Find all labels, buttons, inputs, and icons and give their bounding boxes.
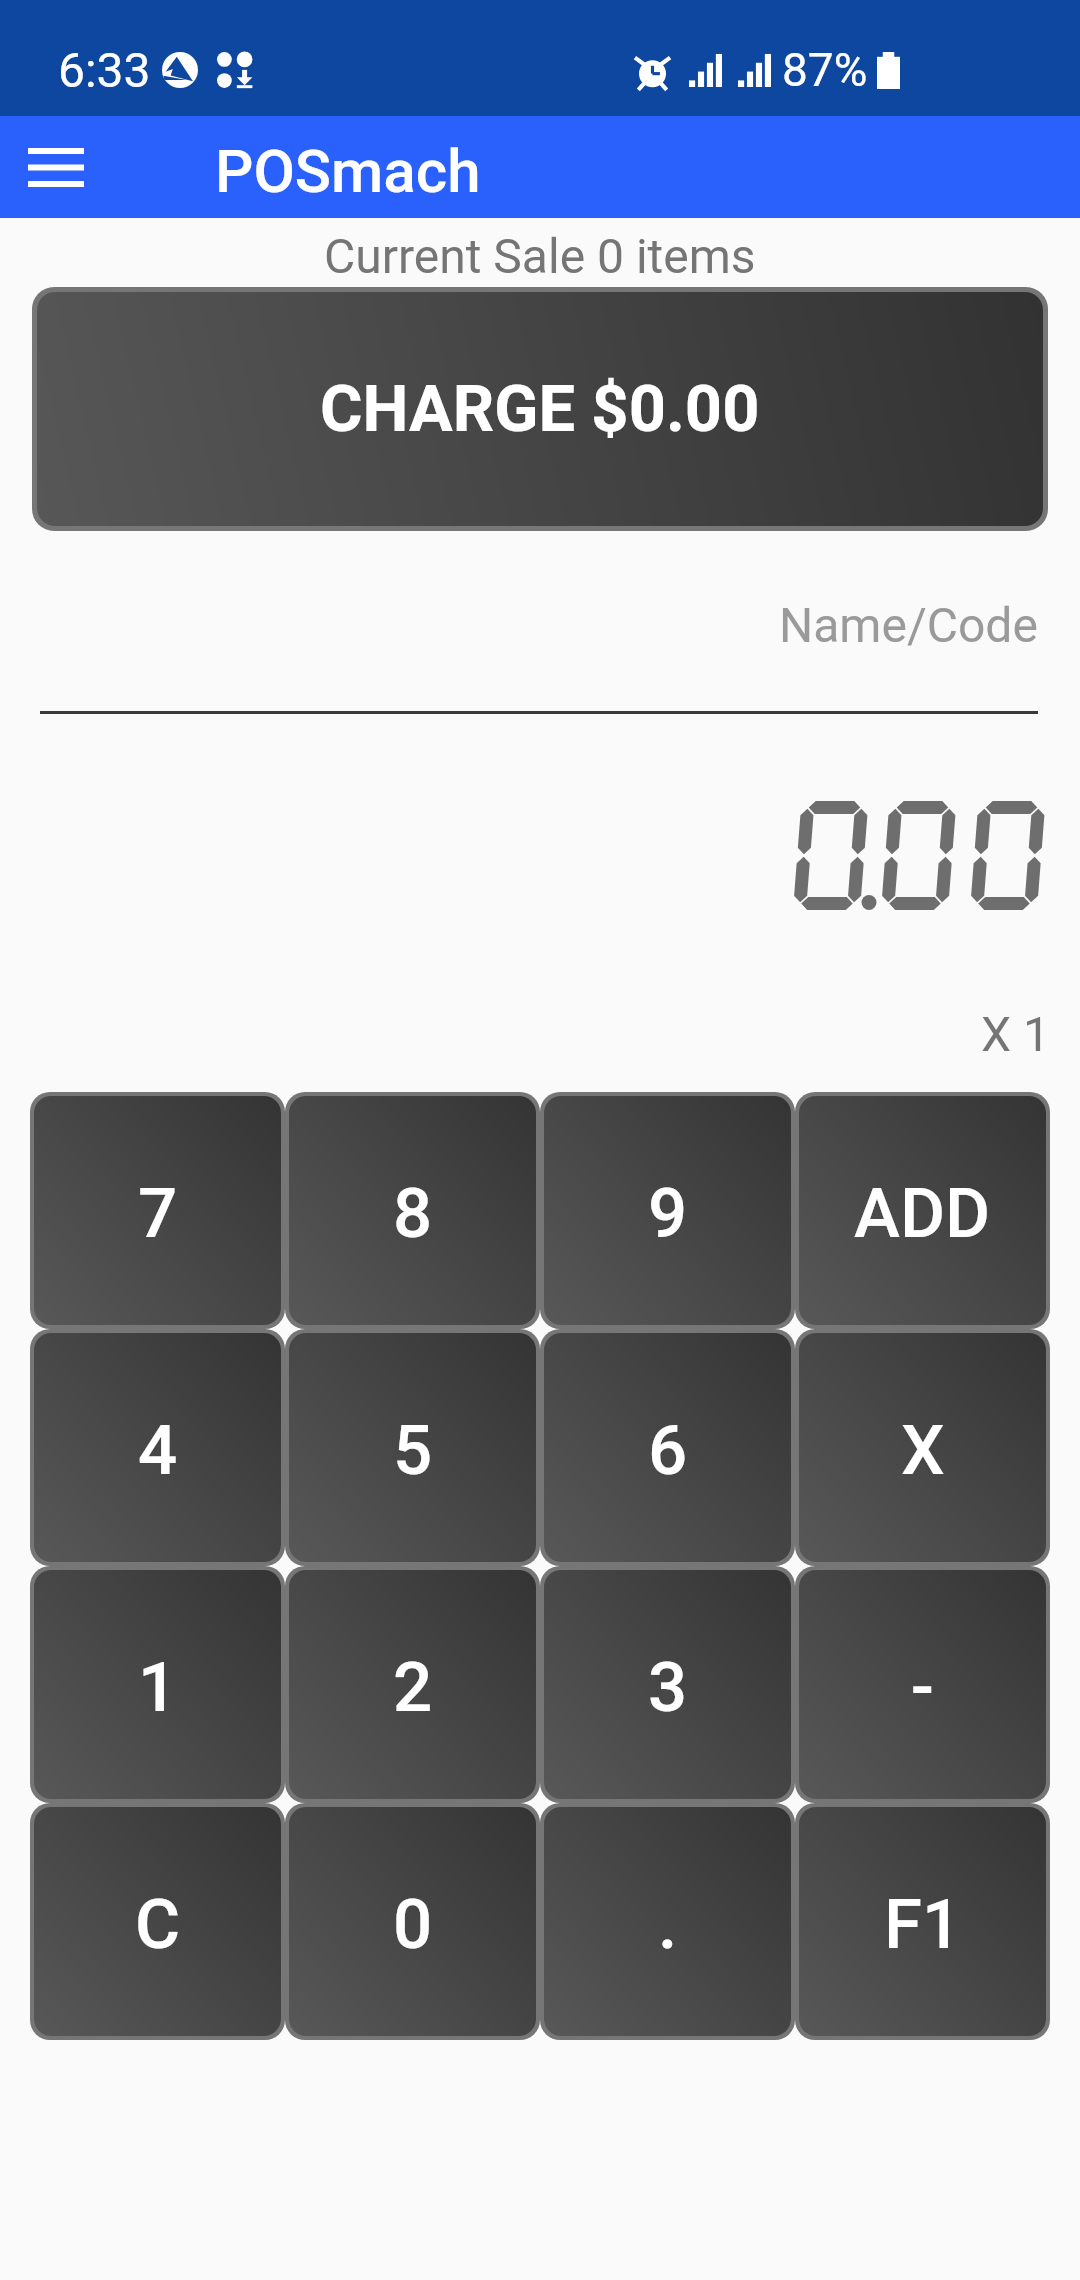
staticText: 8 [393, 1173, 433, 1254]
staticText: 2 [393, 1647, 433, 1728]
staticText: 1 [138, 1647, 178, 1728]
staticText: CHARGE $0.00 [320, 371, 760, 447]
staticText: C [135, 1884, 181, 1965]
staticText: 6:33 [58, 42, 151, 98]
button[interactable]: 7 [34, 1096, 281, 1325]
button[interactable]: 9 [544, 1096, 791, 1325]
staticText: 5 [393, 1410, 433, 1491]
button[interactable]: ADD [799, 1096, 1046, 1325]
button[interactable]: 0 [289, 1807, 536, 2036]
staticText: 7 [138, 1173, 178, 1254]
staticText: 4 [138, 1410, 178, 1491]
button[interactable]: CHARGE $0.00 [37, 292, 1043, 526]
staticText: X [901, 1410, 945, 1491]
button[interactable]: 4 [34, 1333, 281, 1562]
button[interactable]: - [799, 1570, 1046, 1799]
button[interactable]: 6 [544, 1333, 791, 1562]
button[interactable]: F1 [799, 1807, 1046, 2036]
button[interactable]: Name/Code [40, 587, 1038, 714]
staticText: ADD [854, 1173, 991, 1254]
staticText: 9 [648, 1173, 688, 1254]
button[interactable]: . [544, 1807, 791, 2036]
staticText: - [911, 1647, 934, 1728]
staticText: Current Sale 0 items [324, 228, 756, 284]
button[interactable]: Open navigation menu [12, 123, 100, 211]
staticText: POSmach [215, 136, 481, 206]
staticText: 3 [648, 1647, 688, 1728]
button[interactable]: C [34, 1807, 281, 2036]
staticText: F1 [884, 1884, 962, 1965]
staticText: 0 [393, 1884, 433, 1965]
button[interactable]: 5 [289, 1333, 536, 1562]
button[interactable]: 8 [289, 1096, 536, 1325]
button[interactable]: 2 [289, 1570, 536, 1799]
button[interactable]: 3 [544, 1570, 791, 1799]
staticText: . [658, 1884, 678, 1965]
button[interactable]: X [799, 1333, 1046, 1562]
staticText: Name/Code [779, 597, 1038, 653]
staticText: 6 [648, 1410, 688, 1491]
staticText: X 1 [981, 1006, 1050, 1062]
button[interactable]: 1 [34, 1570, 281, 1799]
staticText: 87% [782, 43, 868, 97]
